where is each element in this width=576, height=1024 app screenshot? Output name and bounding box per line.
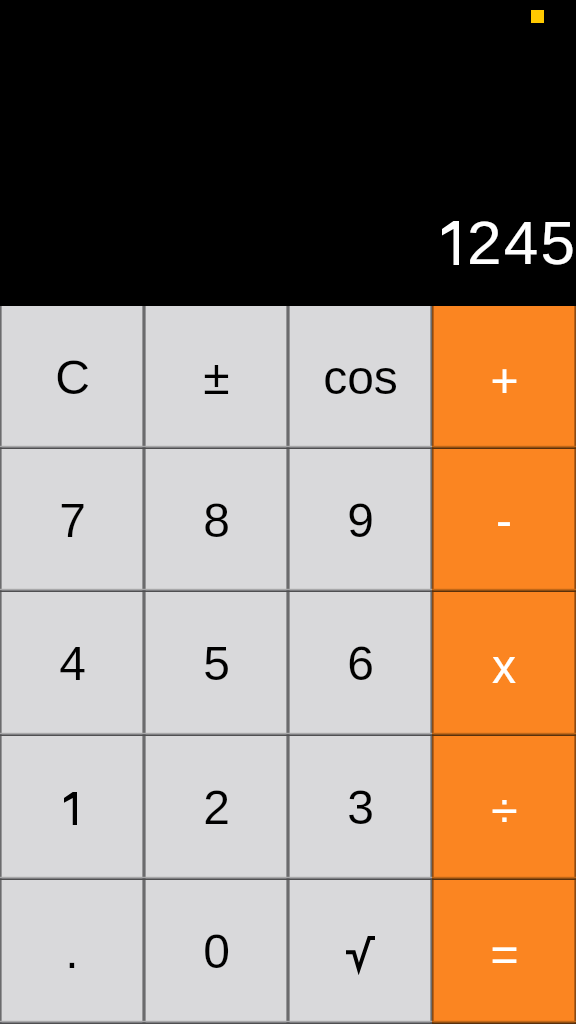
staticText: C (55, 351, 90, 405)
button[interactable]: ± (144, 306, 288, 449)
staticText: . (65, 925, 79, 979)
button[interactable]: 7 (0, 449, 144, 592)
button[interactable]: 9 (288, 449, 432, 592)
button[interactable]: - (432, 449, 576, 592)
staticText: 6 (347, 637, 374, 691)
staticText: ± (203, 351, 230, 405)
button[interactable]: 0 (144, 880, 288, 1024)
button[interactable]: x (432, 592, 576, 736)
button[interactable]: 2 (144, 736, 288, 880)
staticText: cos (323, 351, 398, 405)
staticText: - (496, 494, 512, 548)
button[interactable]: 6 (288, 592, 432, 736)
staticText: 7 (59, 494, 86, 548)
staticText: 3 (347, 781, 374, 835)
staticText: = (490, 928, 519, 982)
staticText: 8 (203, 494, 230, 548)
staticText: ÷ (491, 784, 518, 838)
button[interactable]: 3 (288, 736, 432, 880)
button[interactable]: + (432, 306, 576, 449)
staticText: x (492, 640, 516, 694)
button[interactable]: 5 (144, 592, 288, 736)
button[interactable]: Square root (288, 880, 432, 1024)
staticText: 2 (203, 781, 230, 835)
staticText: 0 (203, 925, 230, 979)
button[interactable]: C (0, 306, 144, 449)
staticText: 245 (467, 208, 576, 277)
staticText: 5 (203, 637, 230, 691)
button[interactable] (0, 736, 144, 880)
staticText: 4 (59, 637, 86, 691)
button[interactable]: . (0, 880, 144, 1024)
staticText: + (490, 354, 519, 408)
button[interactable]: ÷ (432, 736, 576, 880)
button[interactable]: 8 (144, 449, 288, 592)
staticText: 9 (347, 494, 374, 548)
button[interactable]: 4 (0, 592, 144, 736)
button[interactable]: = (432, 880, 576, 1024)
button[interactable]: cos (288, 306, 432, 449)
